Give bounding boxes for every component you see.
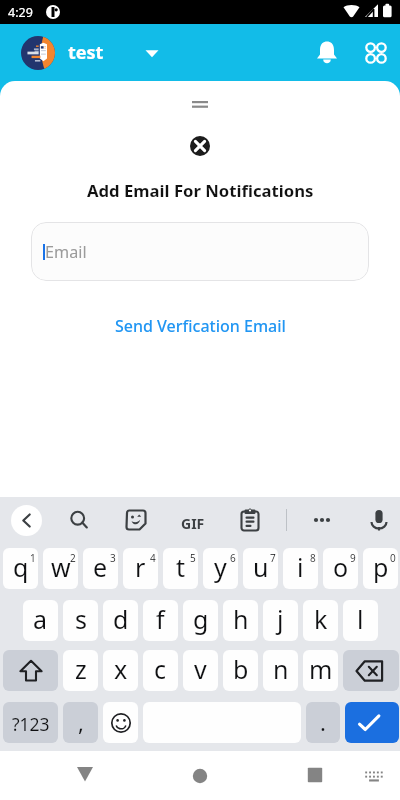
staticText: p [373,550,389,584]
staticText: test [68,40,104,65]
staticText: w [51,550,71,584]
staticText: l [357,602,364,636]
button[interactable]: Home [182,758,218,794]
staticText: h [233,602,249,636]
button[interactable]: Send Verfication Email [105,311,296,341]
staticText: i [297,550,304,584]
button[interactable]: v [183,650,218,691]
staticText: r [135,550,146,584]
button[interactable]: Clipboard [235,505,265,535]
staticText: Add Email For Notifications [87,179,314,202]
button[interactable]: Shift [3,650,58,691]
staticText: s [75,602,87,636]
staticText: a [33,602,48,636]
button[interactable]: Back [67,756,103,792]
staticText: q [13,550,29,584]
button[interactable]: u [243,548,278,589]
button[interactable]: , [63,702,98,743]
button[interactable]: y [203,548,238,589]
button[interactable]: Voice input [364,505,394,535]
staticText: , [78,707,84,737]
staticText: . [320,707,326,737]
staticText: e [93,550,108,584]
staticText: 7 [270,551,276,565]
staticText: 5 [190,551,196,565]
staticText: x [114,652,128,686]
button[interactable]: Enter [345,702,399,743]
staticText: GIF [181,514,205,533]
staticText: z [75,652,87,686]
button[interactable]: Profile [21,36,55,70]
staticText: d [113,602,129,636]
staticText: Email [45,241,87,263]
staticText: u [253,550,269,584]
staticText: c [154,652,167,686]
button[interactable]: Close [190,136,210,156]
staticText: t [176,550,186,584]
button[interactable]: p [363,548,398,589]
staticText: ?123 [12,712,50,736]
staticText: 2 [70,551,76,565]
button[interactable]: Back [11,505,42,536]
staticText: 3 [110,551,116,565]
staticText: n [273,652,289,686]
button[interactable]: Switch account [136,29,168,61]
button[interactable]: j [263,600,298,641]
button[interactable]: s [63,600,98,641]
staticText: 6 [230,551,236,565]
button[interactable]: a [23,600,58,641]
button[interactable]: l [343,600,378,641]
staticText: o [333,550,349,584]
button[interactable]: g [183,600,218,641]
button[interactable]: More options [307,505,337,535]
button[interactable]: k [303,600,338,641]
staticText: Send Verfication Email [115,315,286,337]
button[interactable]: f [143,600,178,641]
staticText: f [156,602,165,636]
button[interactable]: r [123,548,158,589]
staticText: y [214,550,227,584]
button[interactable]: GIF [177,510,209,537]
button[interactable]: h [223,600,258,641]
staticText: 4:29 [8,4,33,21]
button[interactable]: Recents [297,757,333,793]
button[interactable]: d [103,600,138,641]
button[interactable]: t [163,548,198,589]
button[interactable]: z [63,650,98,691]
button[interactable]: x [103,650,138,691]
button[interactable]: q [3,548,38,589]
button[interactable]: b [223,650,258,691]
button[interactable]: e [83,548,118,589]
button[interactable]: Notifications [307,33,347,73]
button[interactable]: Email [31,222,369,281]
button[interactable]: o [323,548,358,589]
button[interactable]: Emoji [103,702,138,743]
button[interactable]: Stickers [121,505,151,535]
button[interactable]: Switch keyboard [355,758,391,794]
staticText: 4 [150,551,156,565]
button[interactable]: i [283,548,318,589]
button[interactable]: Apps [356,33,396,73]
staticText: 8 [310,551,316,565]
staticText: 9 [350,551,356,565]
button[interactable]: Search [64,505,94,535]
button[interactable]: c [143,650,178,691]
staticText: g [193,602,209,636]
button[interactable]: w [43,548,78,589]
button[interactable]: n [263,650,298,691]
staticText: v [194,652,207,686]
staticText: b [233,652,249,686]
staticText: 1 [30,551,36,565]
staticText: 0 [390,551,396,565]
button[interactable]: . [306,702,340,743]
button[interactable]: Backspace [343,650,399,691]
button[interactable]: ?123 [3,702,58,743]
staticText: j [277,602,284,636]
staticText: k [314,602,328,636]
staticText: m [309,652,333,686]
button[interactable]: m [303,650,338,691]
